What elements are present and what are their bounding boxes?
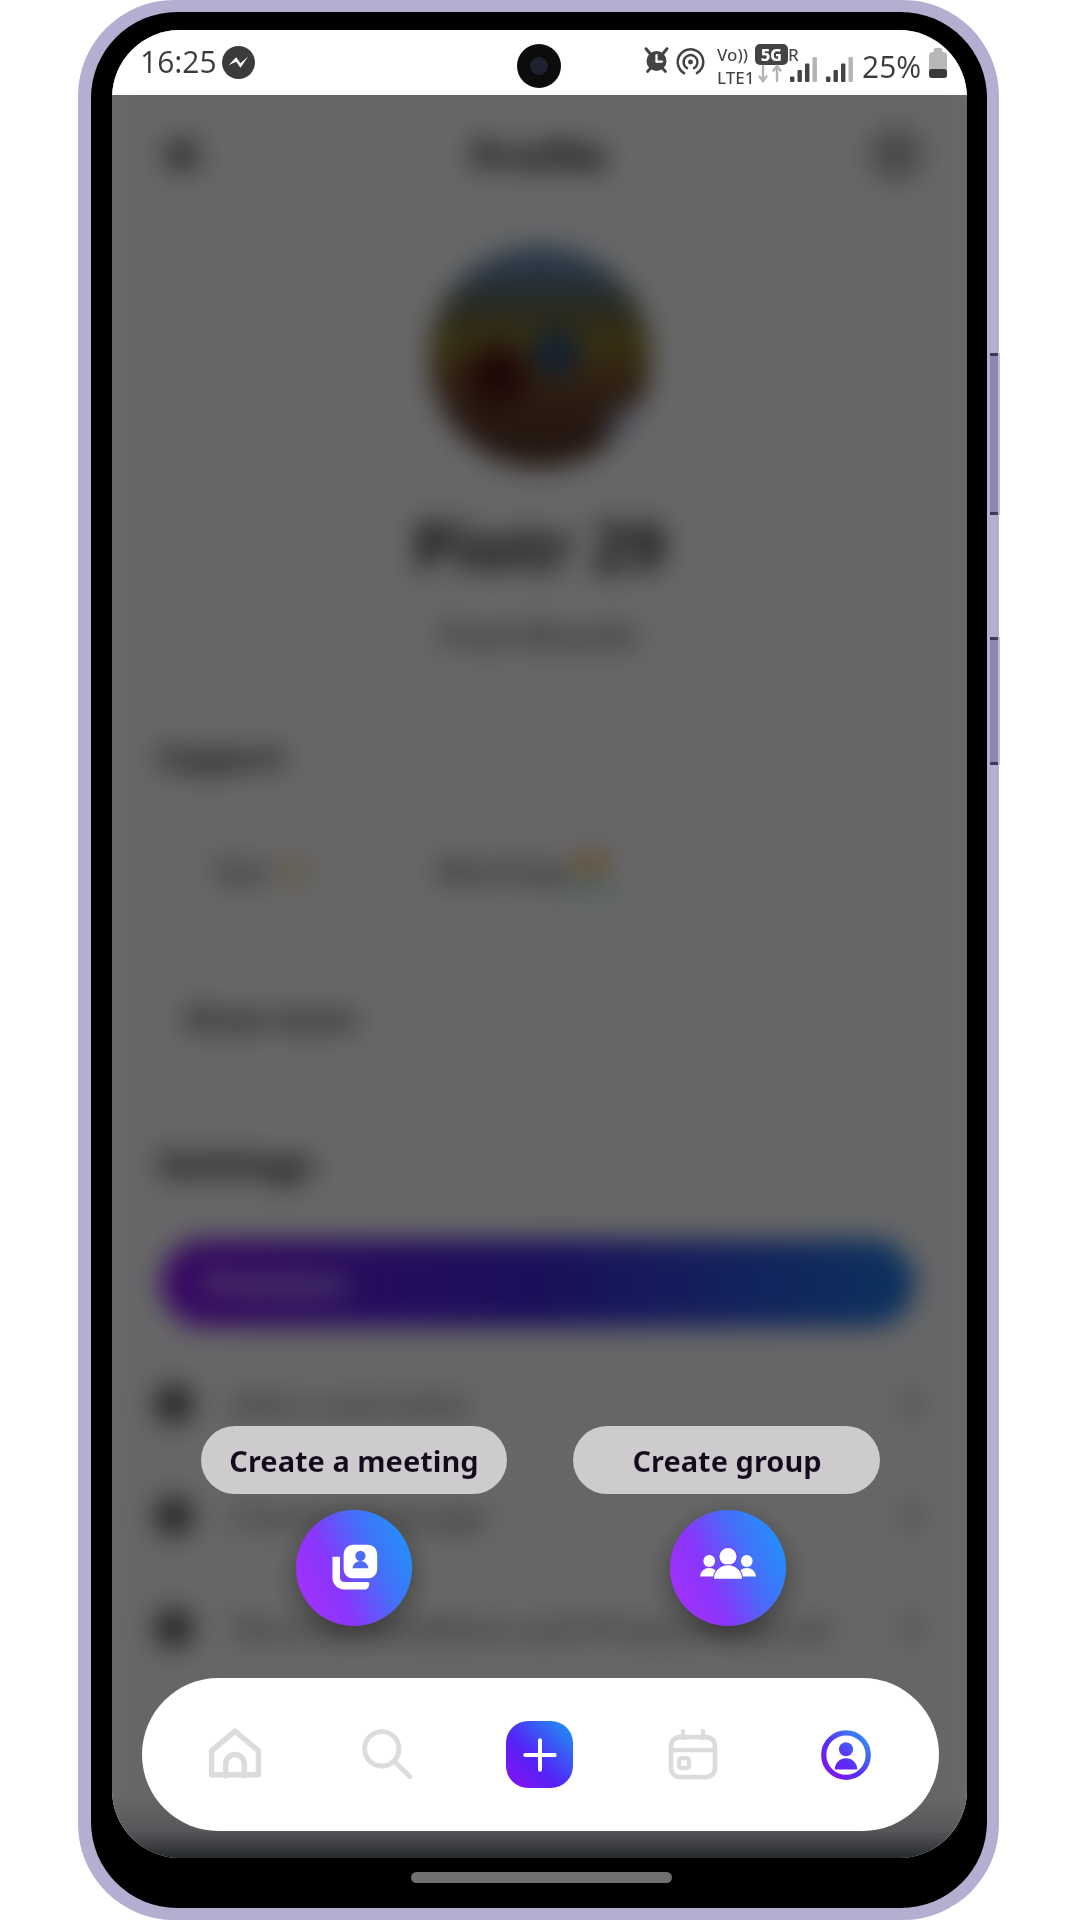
staticText: LTE1 [717,66,755,89]
staticText: Terms & Conditions and Privacy Policy et… [230,1607,834,1649]
staticText: 5G [761,44,782,65]
button[interactable]: Search [311,1678,463,1831]
staticText: Sun 🌤 [214,849,317,891]
staticText: Vo)) [717,43,749,66]
button[interactable]: Profile [769,1678,922,1831]
staticText: Profile [471,126,608,183]
staticText: 25% [862,46,922,87]
button[interactable]: Create group [573,1426,880,1494]
button[interactable]: Create [463,1678,616,1831]
button[interactable]: Create group [670,1510,786,1626]
staticText: Show more [184,997,356,1039]
staticText: Support [158,735,286,779]
staticText: R [788,43,799,66]
staticText: Morning 🌅 [437,849,611,891]
staticText: Change language [230,1495,487,1537]
button[interactable]: Create a meeting [296,1510,412,1626]
button[interactable]: Calendar [616,1678,769,1831]
staticText: Piotr 29 [413,500,666,590]
staticText: Premium [205,1262,346,1304]
button[interactable]: Create a meeting [201,1426,507,1494]
staticText: Create group [632,1441,822,1480]
staticText: Pixel Bloodic [439,612,641,658]
staticText: Settings [158,1137,314,1189]
staticText: 16:25 [140,41,217,82]
button[interactable]: Home [159,1678,311,1831]
staticText: Create a meeting [229,1441,479,1480]
